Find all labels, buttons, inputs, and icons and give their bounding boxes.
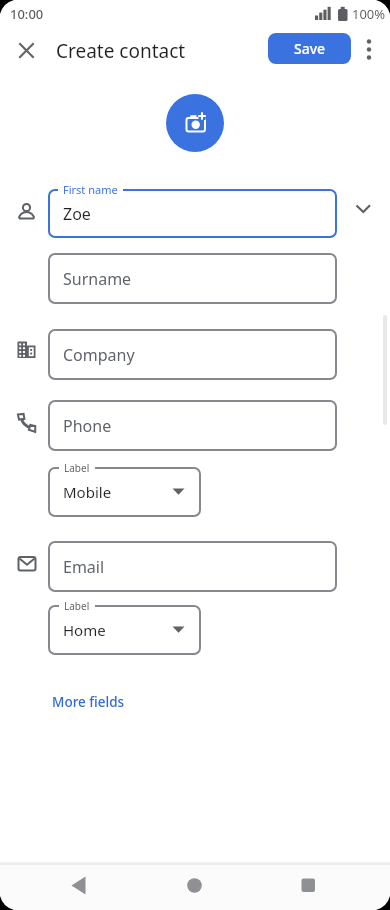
staticText: Label bbox=[64, 599, 90, 613]
button[interactable] bbox=[8, 32, 45, 69]
staticText: Email bbox=[63, 556, 105, 578]
button[interactable]: More fields bbox=[44, 690, 133, 714]
button[interactable]: Home bbox=[48, 605, 201, 655]
button[interactable]: Phone bbox=[48, 400, 337, 451]
staticText: Mobile bbox=[63, 482, 112, 502]
button[interactable]: Zoe bbox=[48, 189, 337, 238]
staticText: Save bbox=[294, 39, 326, 58]
button[interactable]: Email bbox=[48, 541, 337, 592]
staticText: More fields bbox=[52, 693, 125, 711]
button[interactable]: Save bbox=[268, 33, 351, 64]
staticText: First name bbox=[63, 182, 118, 197]
button[interactable]: Surname bbox=[48, 253, 337, 304]
button[interactable] bbox=[286, 863, 331, 908]
staticText: Surname bbox=[63, 268, 132, 290]
staticText: Create contact bbox=[56, 38, 186, 63]
staticText: Zoe bbox=[63, 203, 91, 225]
button[interactable] bbox=[349, 195, 377, 223]
button[interactable]: Company bbox=[48, 329, 337, 380]
staticText: Company bbox=[63, 344, 135, 366]
button[interactable] bbox=[56, 863, 101, 908]
button[interactable] bbox=[355, 32, 387, 64]
button[interactable] bbox=[166, 94, 224, 152]
staticText: Phone bbox=[63, 415, 112, 437]
staticText: Label bbox=[64, 461, 90, 475]
button[interactable] bbox=[172, 863, 217, 908]
staticText: 100% bbox=[352, 5, 386, 23]
staticText: Home bbox=[63, 620, 106, 640]
button[interactable]: Mobile bbox=[48, 467, 201, 517]
staticText: 10:00 bbox=[10, 5, 44, 23]
